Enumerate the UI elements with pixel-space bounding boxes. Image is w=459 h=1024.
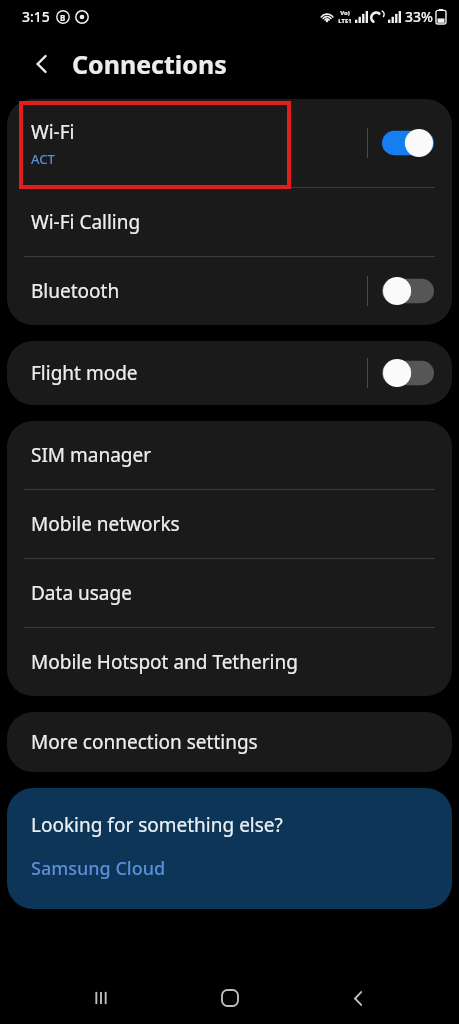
staticText: Data usage <box>31 580 132 606</box>
button[interactable]: Wi-Fi Calling <box>7 188 452 256</box>
button[interactable]: More connection settings <box>7 712 452 772</box>
staticText: B <box>60 12 66 23</box>
staticText: Looking for something else? <box>31 812 283 838</box>
button[interactable]: Toggle Wi-Fi <box>382 127 434 159</box>
button[interactable]: Mobile networks <box>7 490 452 558</box>
button[interactable]: Data usage <box>7 559 452 627</box>
staticText: Vo) <box>340 9 350 17</box>
staticText: ACT <box>31 150 55 168</box>
staticText: Mobile Hotspot and Tethering <box>31 649 298 675</box>
staticText: Flight mode <box>31 360 138 386</box>
button[interactable]: SIM manager <box>7 421 452 489</box>
button[interactable]: Flight mode <box>7 341 452 405</box>
button[interactable]: Toggle Flight mode <box>382 357 434 389</box>
button[interactable]: Home <box>202 972 258 1024</box>
staticText: Connections <box>72 47 227 81</box>
button[interactable]: Mobile Hotspot and Tethering <box>7 628 452 696</box>
staticText: Mobile networks <box>31 511 180 537</box>
staticText: SIM manager <box>31 442 152 468</box>
button[interactable]: Looking for something else? <box>7 788 452 909</box>
staticText: Wi-Fi Calling <box>31 209 141 235</box>
button[interactable]: Toggle Bluetooth <box>382 275 434 307</box>
staticText: LTE1 <box>338 17 352 25</box>
staticText: Wi-Fi <box>31 119 75 145</box>
staticText: Bluetooth <box>31 278 120 304</box>
staticText: 33% <box>405 7 433 26</box>
staticText: 3:15 <box>22 7 50 26</box>
button[interactable]: Recent apps <box>73 972 129 1024</box>
button[interactable]: Wi-Fi <box>7 99 452 187</box>
staticText: More connection settings <box>31 729 258 755</box>
staticText: Samsung Cloud <box>31 856 166 881</box>
button[interactable]: Back <box>330 972 386 1024</box>
button[interactable]: Back <box>20 42 64 86</box>
button[interactable]: Bluetooth <box>7 257 452 325</box>
